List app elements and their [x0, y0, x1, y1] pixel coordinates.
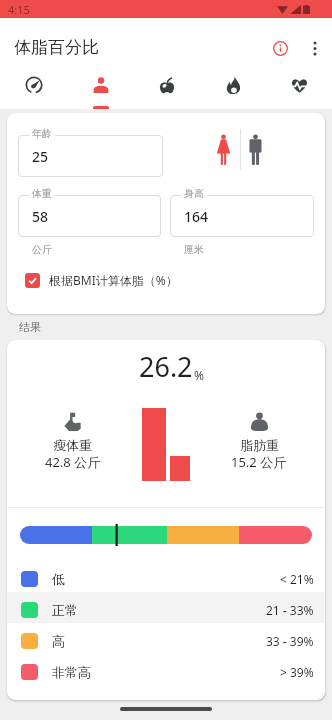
button[interactable]: 根据BMI计算体脂（%）	[25, 272, 178, 288]
staticText: 年龄	[32, 127, 52, 140]
button[interactable]: Male	[243, 127, 267, 171]
button[interactable]: 正常	[7, 592, 325, 623]
staticText: 体重	[32, 187, 52, 200]
staticText: 结果	[19, 320, 41, 334]
staticText: 脂肪重	[240, 437, 279, 453]
staticText: 高	[52, 633, 65, 649]
button[interactable]: Info	[262, 30, 298, 66]
button[interactable]: 非常高	[7, 654, 325, 685]
button[interactable]: Nutrition	[134, 64, 200, 109]
staticText: 身高	[184, 187, 204, 200]
staticText: 4:15	[8, 2, 30, 17]
staticText: 21 - 33%	[266, 602, 314, 618]
staticText: < 21%	[280, 571, 314, 587]
staticText: 164	[184, 207, 209, 226]
button[interactable]: Gauge	[0, 64, 67, 109]
staticText: 低	[52, 571, 65, 587]
staticText: 厘米	[184, 243, 204, 256]
button[interactable]: 低	[7, 561, 325, 592]
button[interactable]: 高	[7, 623, 325, 654]
staticText: 26.2	[139, 348, 193, 385]
staticText: > 39%	[280, 664, 314, 680]
button[interactable]: Heart rate	[266, 64, 332, 109]
button[interactable]: Calories	[200, 64, 266, 109]
staticText: 58	[32, 207, 49, 226]
staticText: 15.2 公斤	[231, 453, 287, 471]
staticText: 非常高	[52, 664, 91, 680]
button[interactable]: Female	[211, 127, 235, 171]
staticText: 33 - 39%	[266, 633, 314, 649]
staticText: 根据BMI计算体脂（%）	[49, 272, 178, 288]
staticText: 25	[32, 147, 49, 166]
button[interactable]: Body fat	[67, 64, 134, 109]
staticText: 42.8 公斤	[45, 453, 101, 471]
staticText: 公斤	[32, 243, 52, 256]
staticText: 体脂百分比	[14, 37, 99, 58]
staticText: 正常	[52, 602, 78, 618]
button[interactable]: More options	[298, 31, 332, 65]
staticText: 瘦体重	[53, 437, 92, 453]
